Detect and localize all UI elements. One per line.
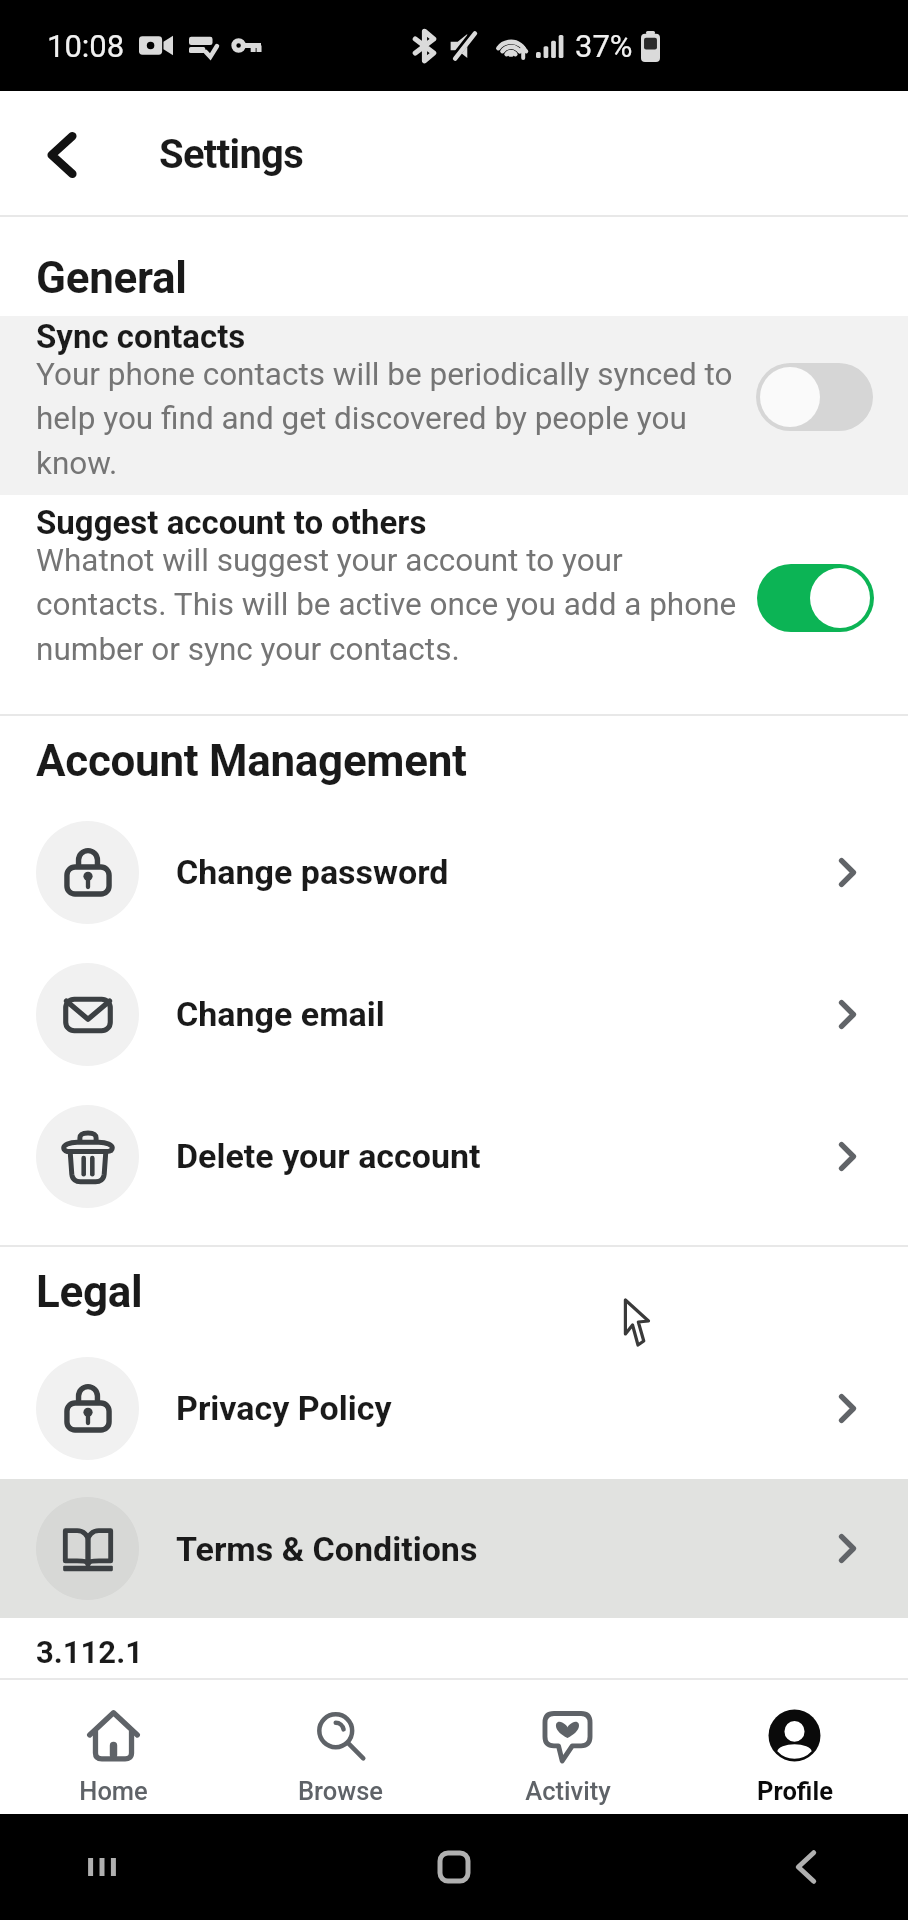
button[interactable]: Profile <box>681 1680 908 1814</box>
button[interactable]: Suggest account to others <box>0 495 908 714</box>
button[interactable]: Change email <box>0 943 908 1085</box>
button[interactable]: Browse <box>227 1680 454 1814</box>
button[interactable]: Toggle on <box>757 564 874 632</box>
staticText: Suggest account to others <box>36 503 427 542</box>
button[interactable]: Privacy Policy <box>0 1337 908 1479</box>
staticText: Settings <box>159 131 304 178</box>
button[interactable]: Home <box>414 1827 494 1907</box>
button[interactable]: Back <box>21 114 103 194</box>
staticText: Browse <box>298 1776 383 1806</box>
staticText: Your phone contacts will be periodically… <box>36 356 741 482</box>
staticText: Change email <box>176 994 839 1034</box>
button[interactable]: Terms & Conditions <box>0 1479 908 1618</box>
staticText: Change password <box>176 852 839 892</box>
staticText: Activity <box>525 1776 611 1806</box>
button[interactable]: Activity <box>454 1680 681 1814</box>
staticText: Account Management <box>36 735 467 787</box>
staticText: General <box>36 252 187 304</box>
staticText: Profile <box>757 1776 833 1806</box>
button[interactable]: Recent apps <box>62 1827 142 1907</box>
button[interactable]: Back <box>766 1827 846 1907</box>
button[interactable]: Change password <box>0 801 908 943</box>
staticText: Delete your account <box>176 1136 839 1176</box>
button[interactable]: Home <box>0 1680 227 1814</box>
staticText: 10:08 <box>47 28 125 64</box>
staticText: 37% <box>575 28 633 64</box>
staticText: Privacy Policy <box>176 1388 839 1428</box>
staticText: Legal <box>36 1266 143 1318</box>
staticText: Terms & Conditions <box>176 1529 839 1569</box>
staticText: Sync contacts <box>36 317 246 356</box>
button[interactable]: Delete your account <box>0 1085 908 1227</box>
button[interactable]: Sync contacts <box>0 316 908 495</box>
staticText: Whatnot will suggest your account to you… <box>36 542 741 668</box>
staticText: 3.112.1 <box>36 1634 143 1670</box>
button[interactable]: Toggle off <box>756 363 873 431</box>
staticText: Home <box>79 1776 148 1806</box>
